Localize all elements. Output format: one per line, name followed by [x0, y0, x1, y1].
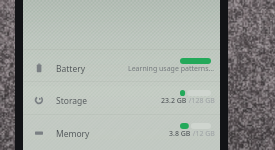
staticText: Learning usage patterns…	[128, 64, 215, 74]
staticText: 23.2 GB	[161, 96, 187, 106]
staticText: /128 GB	[187, 96, 215, 106]
button[interactable]: Memory	[23, 115, 220, 147]
staticText: /12 GB	[191, 129, 215, 139]
button[interactable]: Storage	[23, 82, 220, 114]
staticText: Memory	[56, 128, 90, 140]
button[interactable]: Battery	[23, 50, 220, 82]
staticText: Battery	[56, 63, 86, 75]
staticText: Storage	[56, 95, 88, 107]
staticText: 3.8 GB	[169, 129, 191, 139]
